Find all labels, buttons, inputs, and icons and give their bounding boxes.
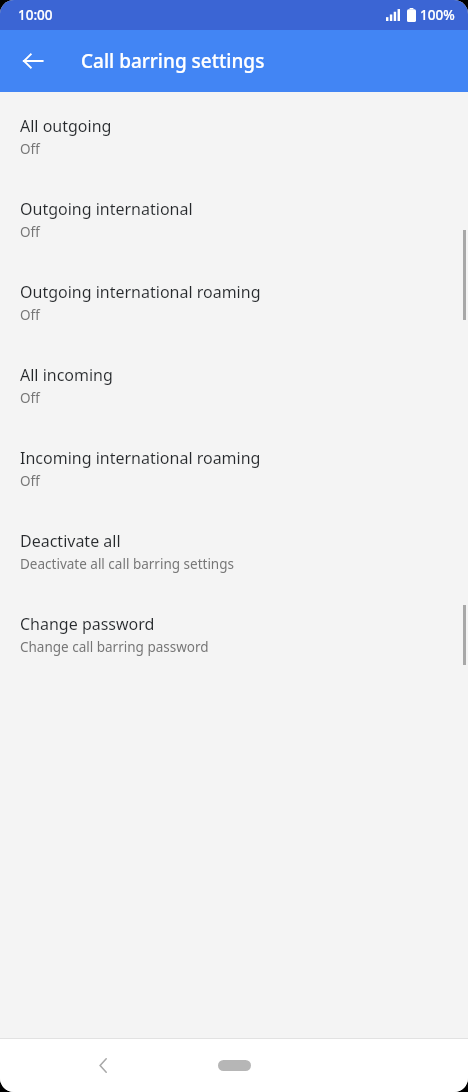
staticText: All outgoing <box>20 115 112 137</box>
staticText: Call barring settings <box>81 48 265 74</box>
staticText: Change call barring password <box>20 638 209 656</box>
staticText: Outgoing international roaming <box>20 281 261 303</box>
button[interactable]: Deactivate all <box>0 525 468 608</box>
button[interactable]: Back <box>81 1043 125 1087</box>
staticText: Change password <box>20 613 155 635</box>
staticText: Incoming international roaming <box>20 447 261 469</box>
staticText: Off <box>20 223 40 241</box>
staticText: Off <box>20 140 40 158</box>
staticText: Outgoing international <box>20 198 193 220</box>
staticText: Deactivate all call barring settings <box>20 555 234 573</box>
staticText: 100% <box>420 6 455 24</box>
staticText: Off <box>20 306 40 324</box>
button[interactable]: Change password <box>0 608 468 691</box>
staticText: 10:00 <box>18 6 53 24</box>
button[interactable]: Outgoing international roaming <box>0 276 468 359</box>
button[interactable]: Outgoing international <box>0 193 468 276</box>
button[interactable]: All incoming <box>0 359 468 442</box>
button[interactable]: All outgoing <box>0 110 468 193</box>
button[interactable]: Navigate up <box>10 38 56 84</box>
staticText: Off <box>20 389 40 407</box>
staticText: Deactivate all <box>20 530 121 552</box>
button[interactable]: Incoming international roaming <box>0 442 468 525</box>
button[interactable]: Home <box>205 1049 263 1081</box>
staticText: All incoming <box>20 364 113 386</box>
staticText: Off <box>20 472 40 490</box>
